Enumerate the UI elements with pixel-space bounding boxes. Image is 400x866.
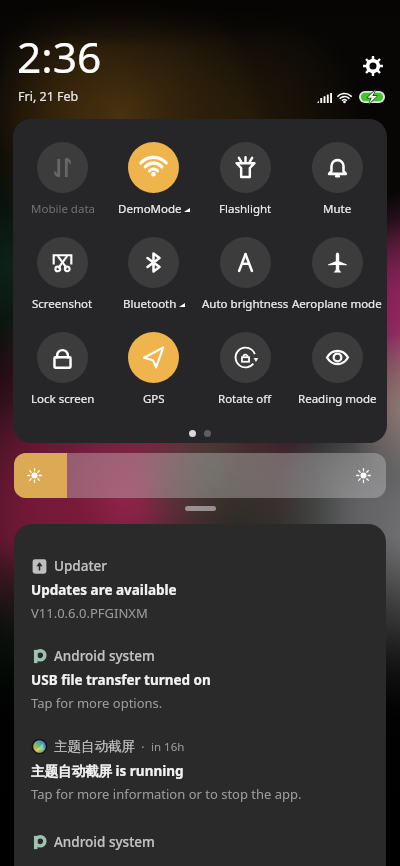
staticText: Tap for more options. xyxy=(31,694,163,712)
staticText: Auto brightness xyxy=(202,296,289,312)
staticText: Fri, 21 Feb xyxy=(18,88,79,105)
staticText: Mobile data xyxy=(31,201,95,217)
staticText: 主题自动截屏 xyxy=(54,738,135,755)
button[interactable]: Lock screen xyxy=(17,332,108,407)
button[interactable]: Reading mode xyxy=(291,332,383,407)
staticText: in 16h xyxy=(151,739,185,755)
staticText: Screenshot xyxy=(32,296,93,312)
staticText: Bluetooth xyxy=(123,296,177,312)
staticText: 2:36 xyxy=(17,28,102,86)
button[interactable]: Bluetooth xyxy=(108,237,199,312)
staticText: 主题自动截屏 is running xyxy=(31,762,184,780)
button[interactable]: Mute xyxy=(291,142,383,217)
button[interactable]: DemoMode xyxy=(108,142,199,217)
button[interactable]: Updater xyxy=(14,551,386,641)
staticText: Updates are available xyxy=(31,581,177,599)
button[interactable]: Android system xyxy=(14,827,386,866)
staticText: USB file transfer turned on xyxy=(31,671,211,689)
staticText: Updater xyxy=(54,557,108,575)
staticText: Android system xyxy=(54,833,155,851)
staticText: GPS xyxy=(143,391,165,407)
staticText: Lock screen xyxy=(31,391,95,407)
staticText: Mute xyxy=(323,201,352,217)
staticText: DemoMode xyxy=(118,201,182,217)
button[interactable]: Rotate off xyxy=(199,332,291,407)
button[interactable]: Flashlight xyxy=(199,142,291,217)
staticText: Aeroplane mode xyxy=(292,296,382,312)
button[interactable]: Auto brightness xyxy=(199,237,291,312)
button[interactable]: Android system xyxy=(14,641,386,732)
staticText: Flashlight xyxy=(219,201,272,217)
button[interactable]: Settings xyxy=(360,53,385,78)
button[interactable]: Brightness xyxy=(14,453,386,498)
button[interactable]: 主题自动截屏 xyxy=(14,732,386,827)
staticText: V11.0.6.0.PFGINXM xyxy=(31,604,148,622)
button[interactable]: Aeroplane mode xyxy=(291,237,383,312)
button[interactable]: Screenshot xyxy=(17,237,108,312)
staticText: Tap for more information or to stop the … xyxy=(31,785,302,803)
staticText: · xyxy=(135,739,151,755)
button[interactable]: Mobile data xyxy=(17,142,108,217)
staticText: Reading mode xyxy=(298,391,377,407)
staticText: Rotate off xyxy=(218,391,272,407)
staticText: Android system xyxy=(54,647,155,665)
button[interactable]: GPS xyxy=(108,332,199,407)
